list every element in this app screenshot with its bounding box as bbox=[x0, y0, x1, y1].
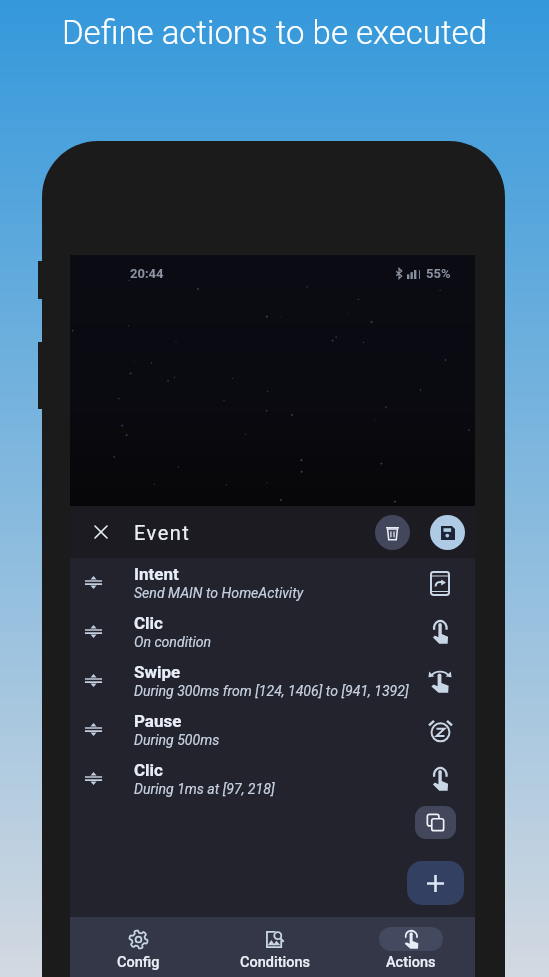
button[interactable]: Close bbox=[85, 516, 117, 548]
staticText: 55% bbox=[426, 266, 451, 281]
button[interactable]: Delete bbox=[375, 515, 410, 550]
staticText: Pause bbox=[134, 711, 182, 731]
staticText: Intent bbox=[134, 564, 179, 584]
staticText: During 500ms bbox=[134, 732, 220, 749]
button[interactable]: Pause bbox=[70, 705, 475, 754]
staticText: Config bbox=[117, 954, 160, 971]
staticText: During 300ms from [124, 1406] to [941, 1… bbox=[134, 683, 409, 700]
button[interactable]: Config bbox=[70, 917, 206, 971]
button[interactable]: Actions bbox=[343, 917, 479, 971]
staticText: Clic bbox=[134, 760, 163, 780]
button[interactable]: Add action bbox=[407, 861, 464, 905]
staticText: Define actions to be executed bbox=[0, 13, 549, 52]
button[interactable]: Conditions bbox=[207, 917, 343, 971]
button[interactable]: Clic bbox=[70, 607, 475, 656]
staticText: Actions bbox=[386, 954, 436, 971]
staticText: Event bbox=[134, 521, 191, 544]
staticText: Swipe bbox=[134, 662, 181, 682]
staticText: During 1ms at [97, 218] bbox=[134, 781, 275, 798]
staticText: On condition bbox=[134, 634, 212, 651]
button[interactable]: Intent bbox=[70, 558, 475, 607]
button[interactable]: Clic bbox=[70, 754, 475, 803]
staticText: 20:44 bbox=[130, 266, 164, 281]
staticText: Send MAIN to HomeActivity bbox=[134, 585, 304, 602]
staticText: Conditions bbox=[240, 954, 310, 971]
button[interactable]: Copy bbox=[415, 806, 456, 839]
button[interactable]: Swipe bbox=[70, 656, 475, 705]
button[interactable]: Save bbox=[430, 515, 465, 550]
staticText: Clic bbox=[134, 613, 163, 633]
